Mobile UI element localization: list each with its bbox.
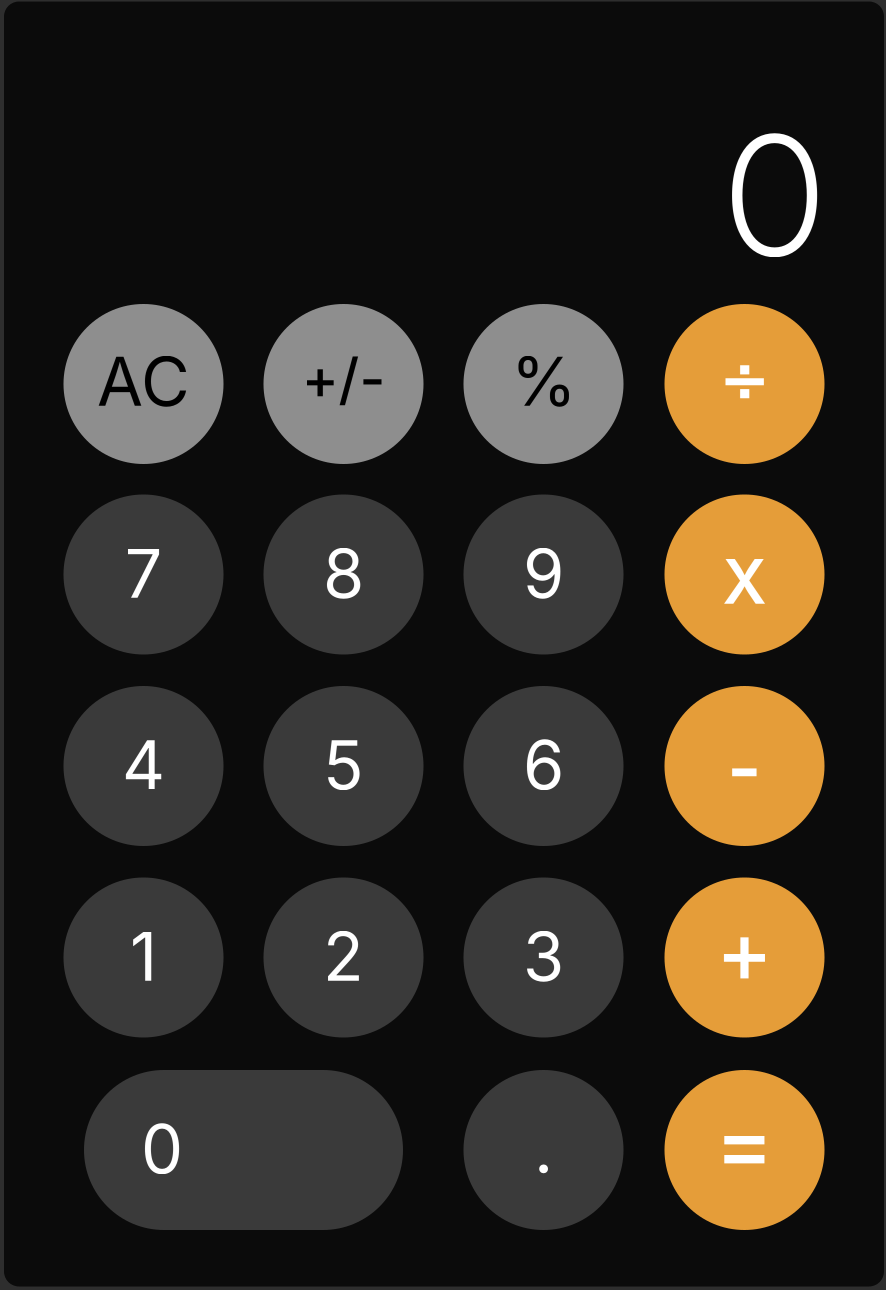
staticText: 2 xyxy=(323,916,364,997)
button[interactable]: 9 xyxy=(463,494,623,654)
button[interactable]: Plus xyxy=(664,877,824,1037)
button[interactable]: Multiply xyxy=(664,494,824,654)
button[interactable]: Divide xyxy=(664,304,824,464)
staticText: 9 xyxy=(523,533,564,614)
staticText: = xyxy=(715,1090,774,1196)
button[interactable]: Decimal Point xyxy=(463,1070,623,1230)
button[interactable]: Minus xyxy=(664,686,824,846)
staticText: 0 xyxy=(725,95,823,295)
staticText: . xyxy=(534,1109,553,1189)
button[interactable]: 4 xyxy=(63,686,223,846)
button[interactable]: 3 xyxy=(463,877,623,1037)
staticText: X xyxy=(722,544,766,619)
button[interactable]: 5 xyxy=(263,686,423,846)
button[interactable]: 0 xyxy=(84,1070,403,1230)
staticText: 6 xyxy=(523,725,564,805)
staticText: 4 xyxy=(122,725,165,805)
button[interactable]: Equals xyxy=(664,1070,824,1230)
staticText: ÷ xyxy=(719,344,770,416)
button[interactable]: 2 xyxy=(263,877,423,1037)
staticText: AC xyxy=(97,341,190,422)
staticText: 3 xyxy=(523,916,564,997)
button[interactable]: 6 xyxy=(463,686,623,846)
button[interactable]: 7 xyxy=(63,494,223,654)
button[interactable]: All Clear xyxy=(63,304,223,464)
staticText: - xyxy=(727,723,762,813)
button[interactable]: 8 xyxy=(263,494,423,654)
button[interactable]: 1 xyxy=(63,877,223,1037)
staticText: 5 xyxy=(323,725,364,805)
staticText: 0 xyxy=(141,1109,183,1189)
staticText: 8 xyxy=(323,533,364,614)
button[interactable]: Percent xyxy=(463,304,623,464)
staticText: 1 xyxy=(130,916,157,997)
staticText: + xyxy=(716,899,773,1003)
button[interactable]: Plus Minus xyxy=(263,304,423,464)
staticText: % xyxy=(511,341,576,422)
staticText: 7 xyxy=(124,533,162,614)
staticText: +/- xyxy=(301,345,385,413)
